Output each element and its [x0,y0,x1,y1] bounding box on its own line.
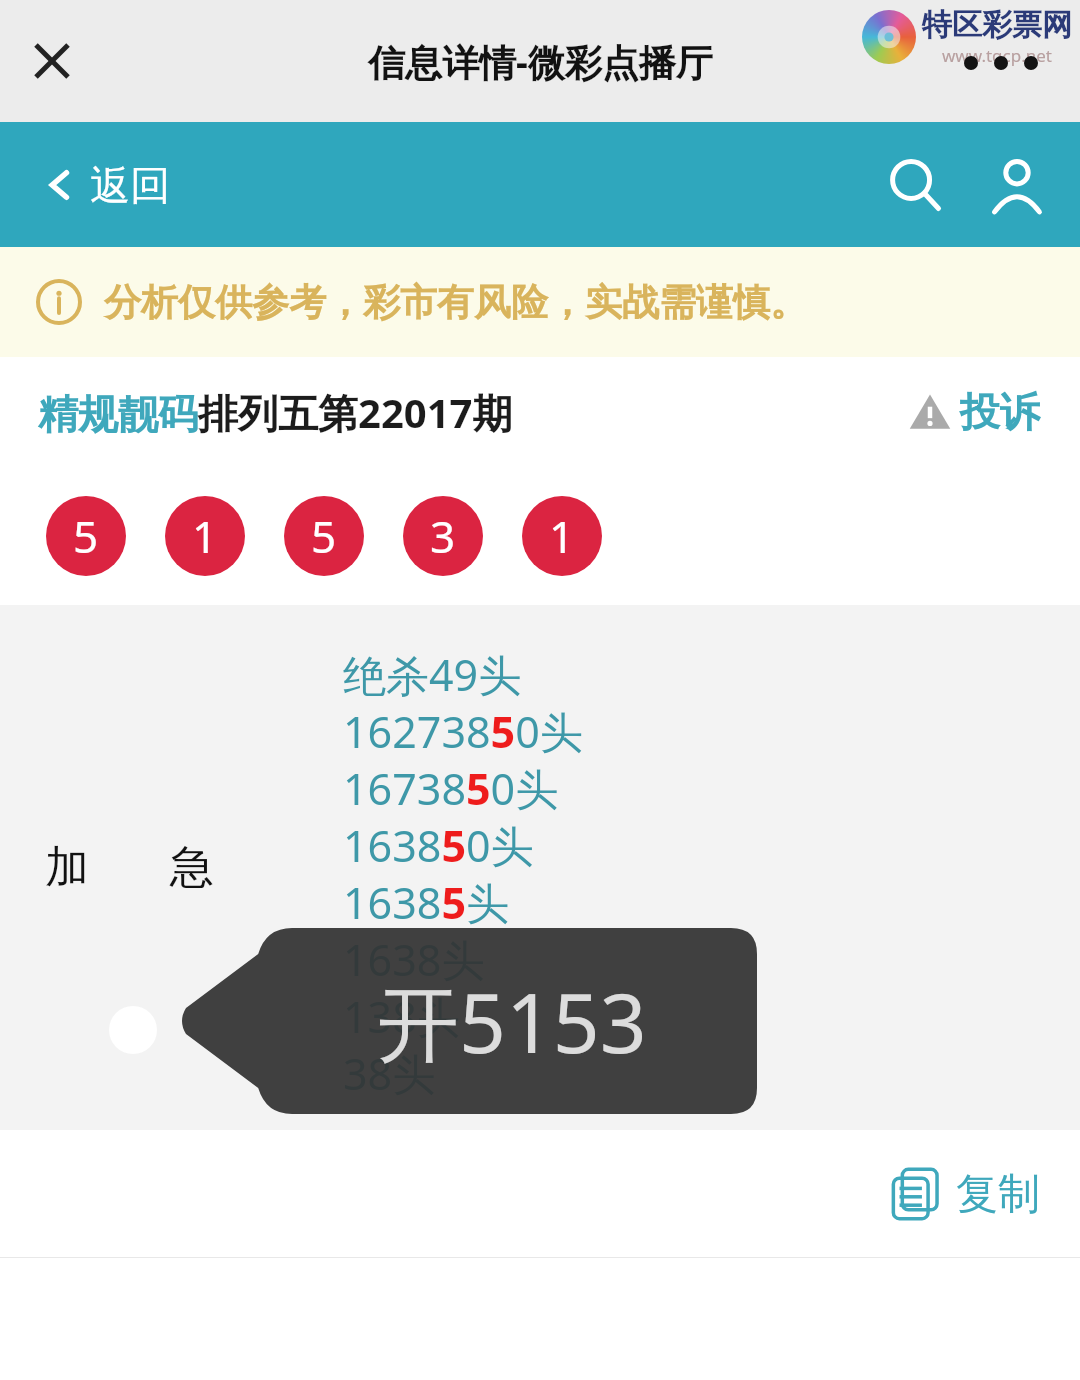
button[interactable]: 复制 [884,1160,1046,1228]
staticText: 分析仅供参考，彩市有风险，实战需谨慎。 [104,279,807,326]
staticText: 加 [45,840,89,895]
staticText: 投诉 [960,387,1040,437]
staticText: 1 [192,506,218,566]
staticText: www.tqcp.net [942,44,1052,67]
button[interactable]: 3 [403,496,483,576]
staticText: 38头 [343,1044,436,1101]
staticText: 返回 [90,160,170,210]
button[interactable]: 开5153 [182,928,757,1114]
button[interactable]: 返回 [34,148,178,222]
staticText: 开5153 [377,965,647,1077]
staticText: 16385头 [343,873,509,930]
button[interactable]: Close [16,25,88,97]
staticText: 复制 [956,1168,1040,1221]
button[interactable]: Search [878,148,952,222]
staticText: 16273850头 [343,702,583,759]
staticText: 1 [549,506,575,566]
staticText: 3 [430,506,456,566]
staticText: 5 [73,506,99,566]
staticText: 163850头 [343,816,534,873]
staticText: 精规靓码排列五第22017期 [38,385,513,440]
button[interactable]: 1 [165,496,245,576]
staticText: 信息详情-微彩点播厅 [368,36,713,87]
staticText: 1638头 [343,930,485,987]
button[interactable]: 投诉 [902,381,1046,443]
staticText: 1673850头 [343,759,559,816]
staticText: 急 [170,840,214,895]
staticText: 138头 [343,987,460,1044]
staticText: 特区彩票网 [922,6,1072,44]
button[interactable]: More options [960,52,1042,74]
staticText: 5 [311,506,337,566]
button[interactable]: Account [980,148,1054,222]
button[interactable]: 1 [522,496,602,576]
button[interactable]: 5 [46,496,126,576]
staticText: 绝杀49头 [343,645,522,702]
button[interactable]: 5 [284,496,364,576]
